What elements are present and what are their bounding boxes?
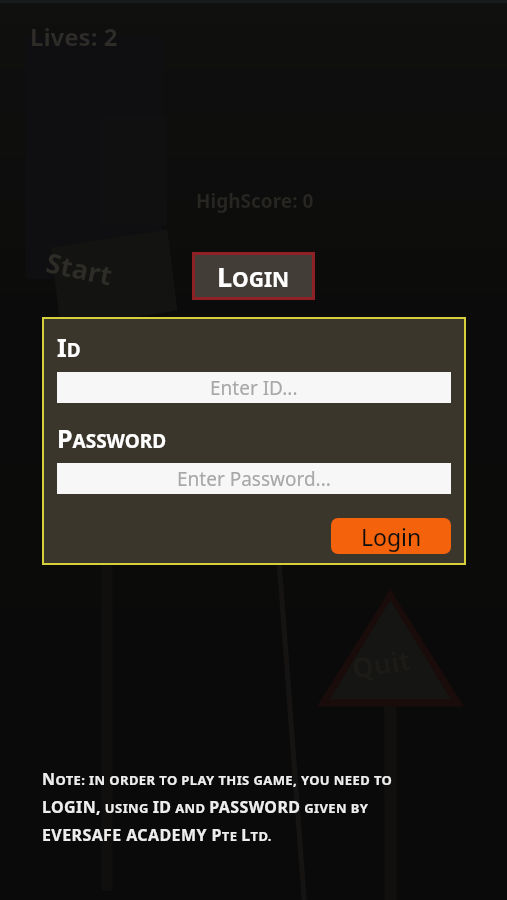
staticText: ID bbox=[57, 330, 81, 364]
staticText: Quit bbox=[349, 641, 414, 686]
staticText: LOGIN, USING ID AND PASSWORD GIVEN BY bbox=[42, 796, 369, 818]
staticText: HighScore: 0 bbox=[196, 188, 314, 214]
staticText: Enter ID... bbox=[210, 375, 298, 401]
staticText: Enter Password... bbox=[177, 466, 331, 492]
staticText: NOTE: IN ORDER TO PLAY THIS GAME, YOU NE… bbox=[42, 768, 393, 790]
button[interactable]: Enter ID... bbox=[57, 372, 451, 403]
button[interactable]: Enter Password... bbox=[57, 463, 451, 494]
staticText: Start bbox=[43, 243, 116, 293]
button[interactable]: LOGIN bbox=[192, 252, 315, 300]
staticText: EVERSAFE ACADEMY PTE LTD. bbox=[42, 824, 272, 846]
staticText: LOGIN bbox=[217, 258, 290, 295]
staticText: Login bbox=[361, 521, 422, 552]
staticText: Lives: 2 bbox=[30, 20, 118, 53]
staticText: PASSWORD bbox=[57, 421, 167, 455]
button[interactable]: Login bbox=[331, 518, 451, 554]
